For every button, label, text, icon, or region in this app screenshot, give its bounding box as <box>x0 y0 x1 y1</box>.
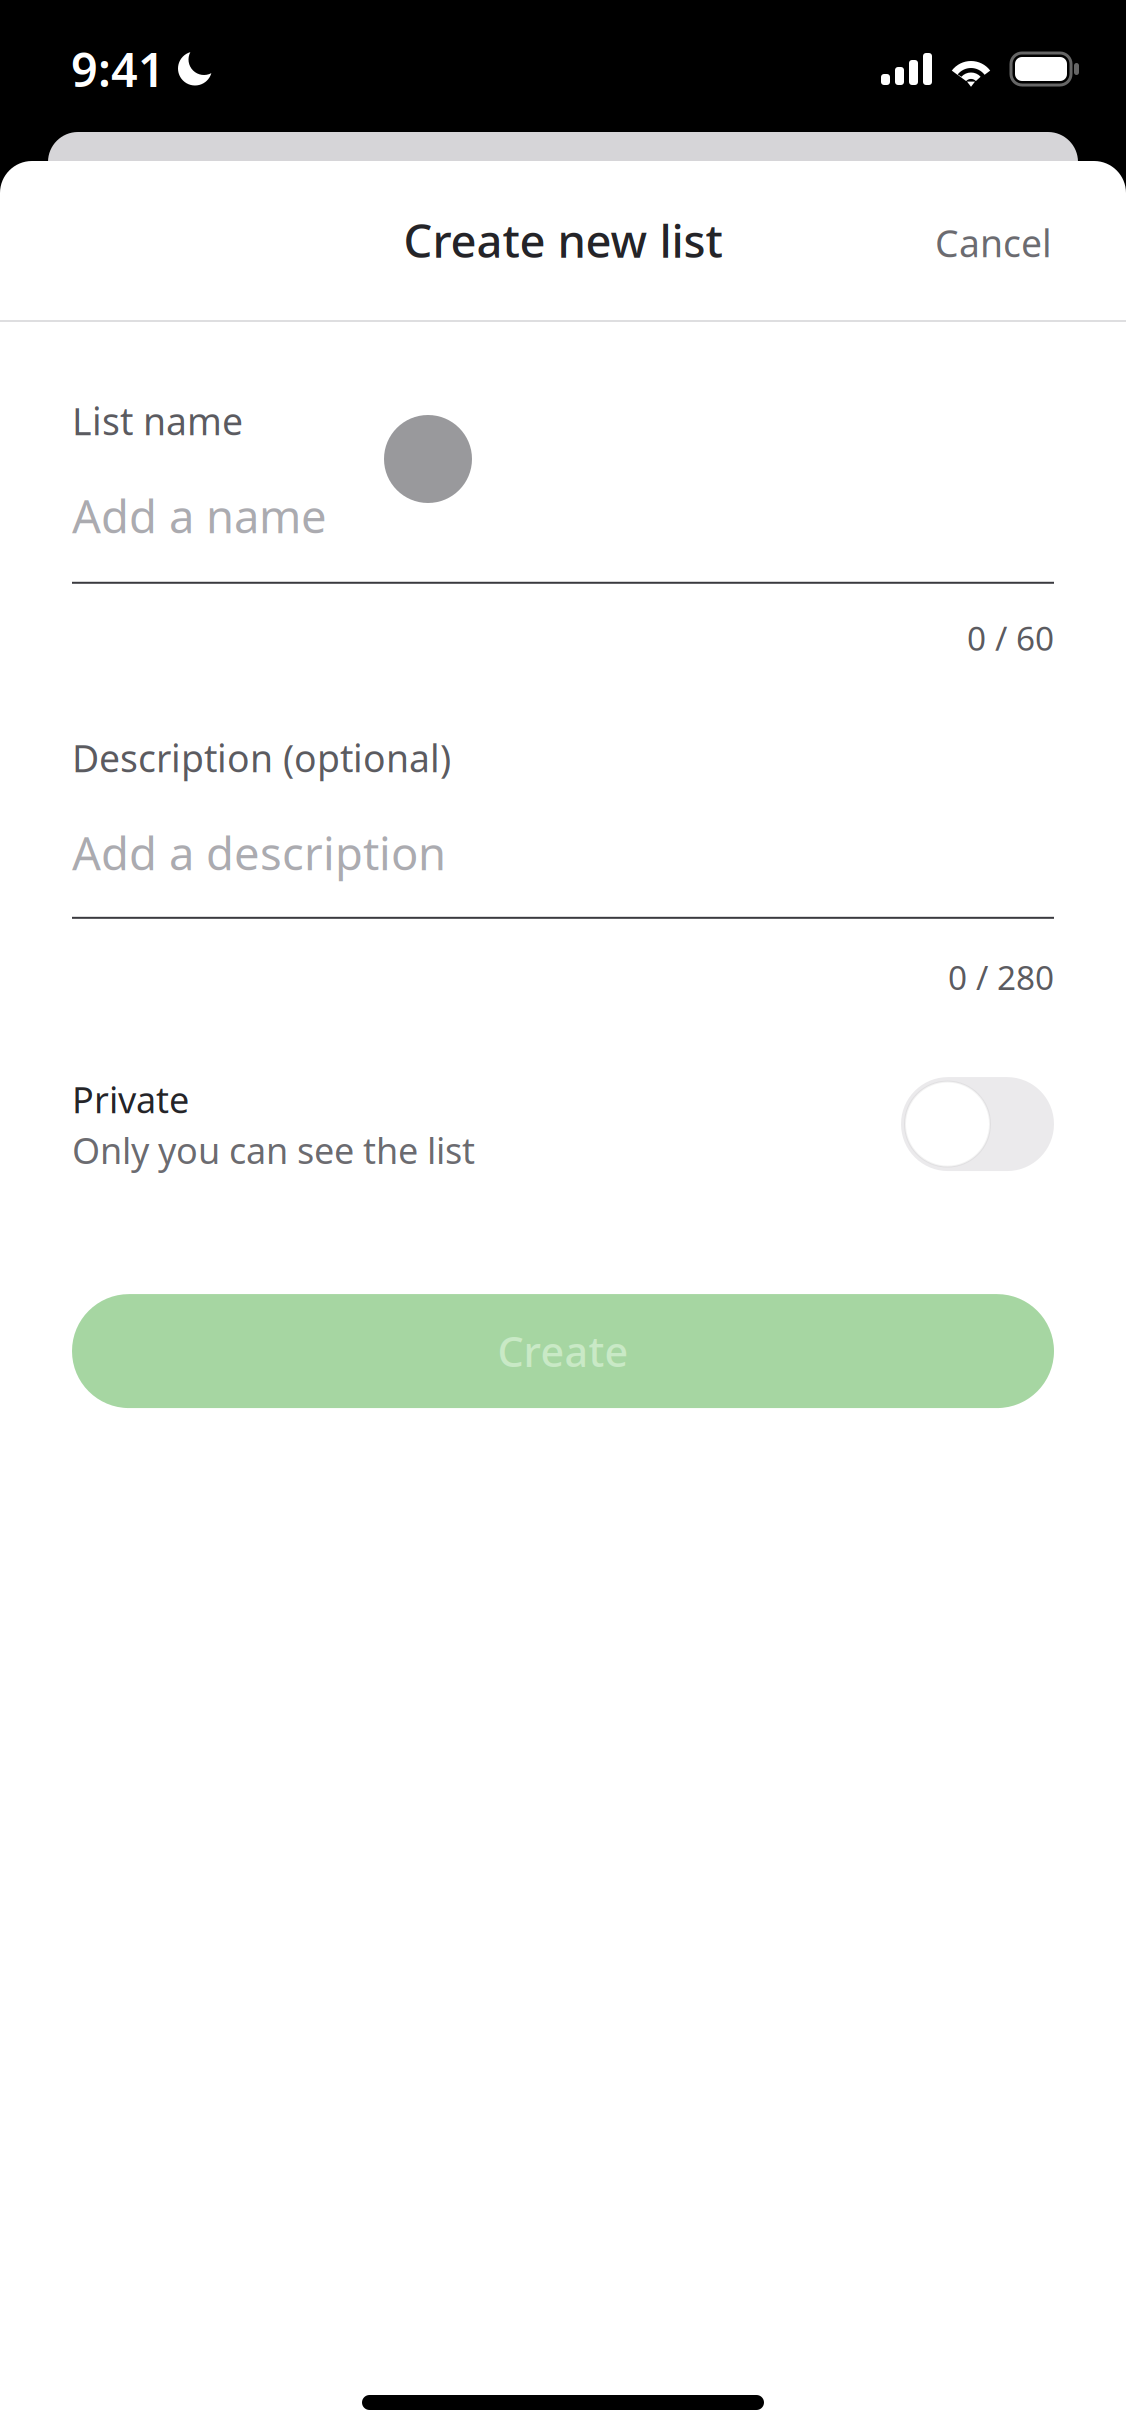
staticText: Private <box>72 1075 189 1123</box>
staticText: Cancel <box>935 218 1052 268</box>
staticText: Add a name <box>72 486 327 546</box>
staticText: Create new list <box>403 210 722 270</box>
staticText: 0 / 280 <box>948 955 1054 999</box>
staticText: Only you can see the list <box>72 1126 475 1174</box>
staticText: 9:41 <box>71 38 165 100</box>
button[interactable]: Cancel <box>911 208 1052 278</box>
staticText: Description (optional) <box>72 733 451 783</box>
staticText: 0 / 60 <box>967 616 1054 660</box>
staticText: Add a description <box>72 823 446 883</box>
button[interactable]: List name <box>72 396 1054 584</box>
button[interactable]: Private <box>72 1075 1054 1173</box>
button[interactable]: Description (optional) <box>72 733 1054 919</box>
staticText: Create <box>497 1324 628 1378</box>
staticText: List name <box>72 396 243 446</box>
button[interactable]: Create <box>72 1294 1054 1408</box>
